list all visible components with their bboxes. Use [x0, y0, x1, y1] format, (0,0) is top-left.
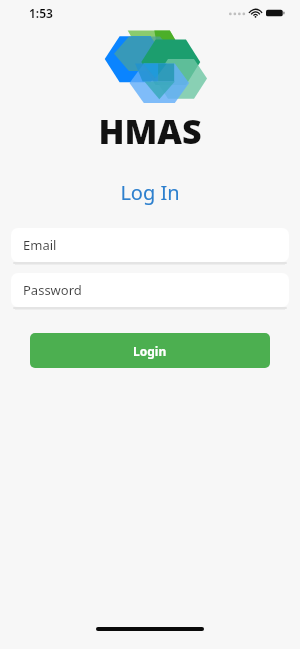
staticText: HMAS — [98, 108, 202, 154]
staticText: 1:53 — [29, 5, 53, 21]
staticText: Email — [23, 236, 57, 254]
staticText: Password — [23, 281, 82, 299]
button[interactable]: Password — [11, 273, 289, 307]
button[interactable]: Log In — [0, 179, 300, 206]
button[interactable]: Login — [30, 333, 270, 368]
staticText: Login — [133, 343, 167, 359]
staticText: Log In — [120, 179, 180, 206]
button[interactable]: Email — [11, 228, 289, 262]
